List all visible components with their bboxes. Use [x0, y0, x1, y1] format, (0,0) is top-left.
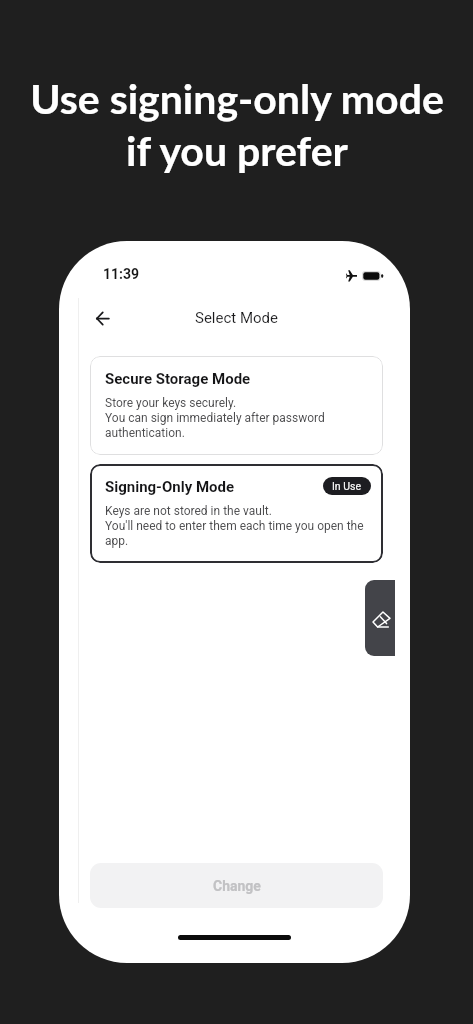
staticText: Keys are not stored in the vault. You'll…: [105, 504, 364, 548]
staticText: Secure Storage Mode: [105, 370, 251, 388]
staticText: Change: [213, 878, 261, 894]
button[interactable]: Change: [90, 863, 383, 908]
staticText: Use signing-only mode if you prefer: [30, 74, 444, 175]
button[interactable]: Secure Storage Mode: [90, 356, 383, 455]
button[interactable]: Signing-Only Mode: [90, 464, 383, 563]
button[interactable]: Eraser: [365, 580, 395, 656]
button[interactable]: Back: [88, 304, 116, 332]
staticText: 11:39: [103, 266, 140, 282]
staticText: In Use: [332, 480, 362, 492]
staticText: Select Mode: [195, 309, 279, 327]
staticText: Store your keys securely. You can sign i…: [105, 396, 325, 440]
staticText: Signing-Only Mode: [105, 478, 235, 496]
